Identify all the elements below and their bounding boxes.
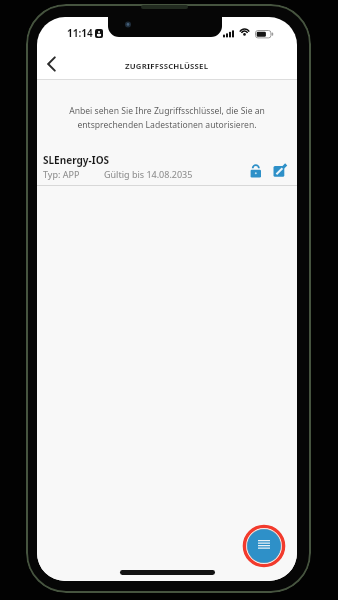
staticText: Typ: APP bbox=[43, 168, 80, 180]
staticText: Anbei sehen Sie Ihre Zugriffsschlüssel, … bbox=[69, 105, 265, 131]
staticText: SLEnergy-IOS bbox=[43, 153, 110, 167]
button[interactable] bbox=[249, 164, 263, 178]
staticText: ZUGRIFFSSCHLÜSSEL bbox=[125, 61, 209, 72]
button[interactable] bbox=[273, 163, 288, 178]
staticText: Gültig bis 14.08.2035 bbox=[104, 168, 193, 180]
staticText: 11:14 bbox=[67, 26, 93, 40]
button[interactable] bbox=[41, 55, 59, 75]
button[interactable]: SLEnergy-IOS bbox=[37, 151, 297, 186]
button[interactable] bbox=[241, 523, 287, 569]
